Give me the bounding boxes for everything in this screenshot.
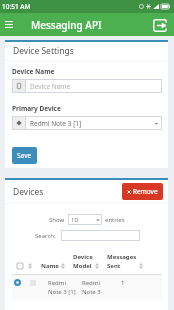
- staticText: 10:51 AM: [2, 2, 31, 11]
- staticText: Device Model: [73, 253, 93, 270]
- button[interactable]: [61, 230, 140, 241]
- staticText: Device Name: [12, 67, 55, 76]
- staticText: Device Name: [30, 82, 71, 91]
- button[interactable]: Remove: [122, 183, 163, 200]
- staticText: Redmi Note 3 [1]: [48, 279, 76, 296]
- staticText: Messaging API: [31, 18, 102, 32]
- staticText: entries: [105, 216, 125, 224]
- staticText: Search:: [35, 232, 56, 240]
- staticText: Redmi Note 3 [1]: [30, 119, 82, 128]
- staticText: Primary Device: [12, 104, 61, 113]
- button[interactable]: Save: [12, 147, 37, 164]
- staticText: Device Settings: [13, 45, 74, 57]
- button[interactable]: Redmi Note 3 [1]: [12, 116, 162, 130]
- staticText: Devices: [13, 186, 44, 198]
- button[interactable]: Sign out: [151, 16, 169, 34]
- staticText: Show: [49, 216, 65, 224]
- staticText: Name: [41, 262, 59, 270]
- staticText: Save: [17, 151, 32, 160]
- button[interactable]: 10: [68, 214, 102, 225]
- staticText: Remove: [133, 187, 158, 196]
- staticText: 10: [71, 216, 78, 224]
- button[interactable]: Device Name: [12, 79, 162, 93]
- staticText: 1: [121, 279, 125, 287]
- staticText: Redmi Note 3: [82, 279, 101, 296]
- button[interactable]: Menu: [0, 13, 18, 36]
- button[interactable]: Redmi Note 3 [1]: [12, 279, 162, 296]
- staticText: Messages Sent: [107, 253, 137, 270]
